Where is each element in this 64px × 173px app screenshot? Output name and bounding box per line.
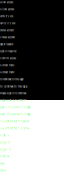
staticText: Sign in [0, 148, 11, 151]
staticText: Almost there [0, 71, 14, 74]
staticText: to continue to this app [0, 85, 28, 88]
staticText: Confirm access [0, 57, 16, 60]
staticText: Sign in to continue to the app [0, 113, 30, 116]
staticText: Almost there [0, 64, 14, 67]
staticText: Please sign in to continue [0, 92, 26, 95]
staticText: Sign in to continue to the app [0, 106, 30, 109]
staticText: Verify it's you [0, 22, 15, 25]
staticText: Next [0, 169, 7, 172]
staticText: Sign in [0, 141, 9, 144]
staticText: Continue [0, 155, 9, 158]
staticText: Sign in required [0, 50, 16, 53]
staticText: Choose account [0, 36, 15, 39]
staticText: Use your account to continue [0, 127, 29, 130]
staticText: Choose account [0, 29, 14, 32]
staticText: Use your account to continue [0, 120, 29, 123]
staticText: to continue to this app [0, 78, 23, 81]
staticText: Next [0, 162, 6, 165]
staticText: Allow access [0, 8, 14, 11]
staticText: Sign in required [0, 43, 13, 46]
staticText: Verify it's you [0, 15, 13, 18]
staticText: Allow access [0, 1, 13, 4]
staticText: Please sign in to continue [0, 99, 26, 102]
staticText: Sign in [0, 134, 8, 137]
